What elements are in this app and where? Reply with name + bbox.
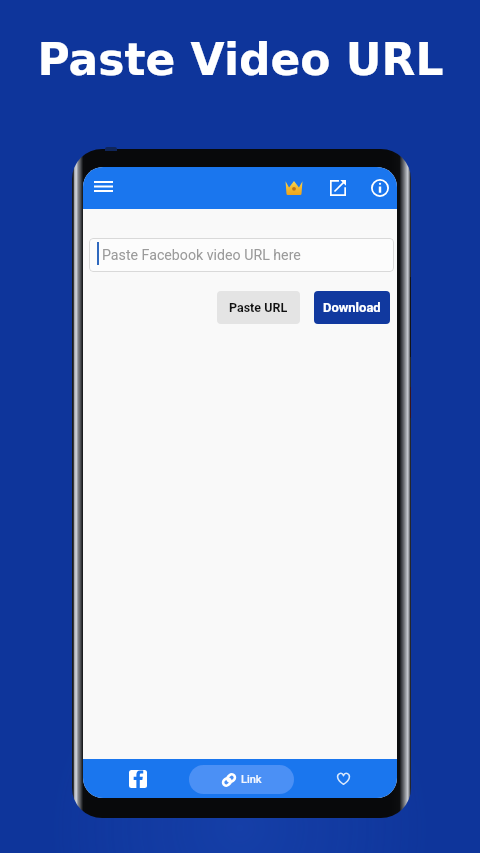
button[interactable]: Facebook	[120, 759, 156, 798]
button[interactable]: Paste URL	[217, 291, 300, 324]
staticText: Link	[241, 773, 262, 786]
button[interactable]: Info	[365, 173, 395, 203]
staticText: Paste URL	[229, 300, 288, 315]
button[interactable]: Share	[323, 173, 353, 203]
button[interactable]: Menu	[86, 169, 120, 203]
button[interactable]: Link	[189, 765, 294, 794]
button[interactable]: Paste Facebook video URL here	[89, 238, 394, 272]
button[interactable]: Favorites	[325, 759, 361, 798]
button[interactable]: Premium	[279, 173, 309, 203]
staticText: Paste Video URL	[37, 34, 444, 85]
staticText: Download	[323, 300, 381, 315]
staticText: Paste Facebook video URL here	[102, 247, 301, 264]
button[interactable]: Download	[314, 291, 390, 324]
